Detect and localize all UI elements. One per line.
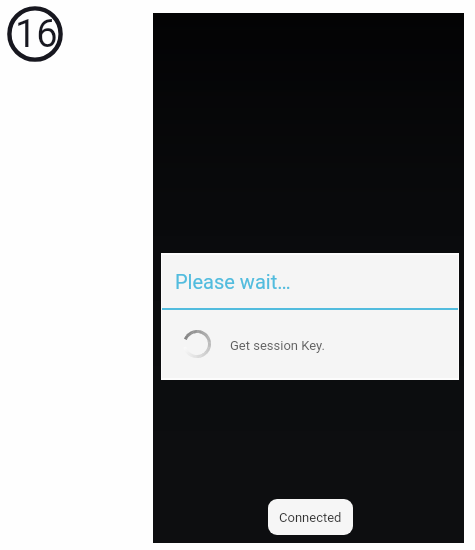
button[interactable]: Connected: [268, 499, 353, 535]
staticText: 16: [15, 12, 58, 57]
staticText: Please wait…: [175, 270, 291, 293]
other: Loading: [183, 330, 211, 358]
button[interactable]: Please wait…: [161, 253, 459, 380]
other: Figure 16: [7, 6, 63, 62]
staticText: Connected: [279, 510, 342, 525]
staticText: Get session Key.: [230, 338, 325, 353]
